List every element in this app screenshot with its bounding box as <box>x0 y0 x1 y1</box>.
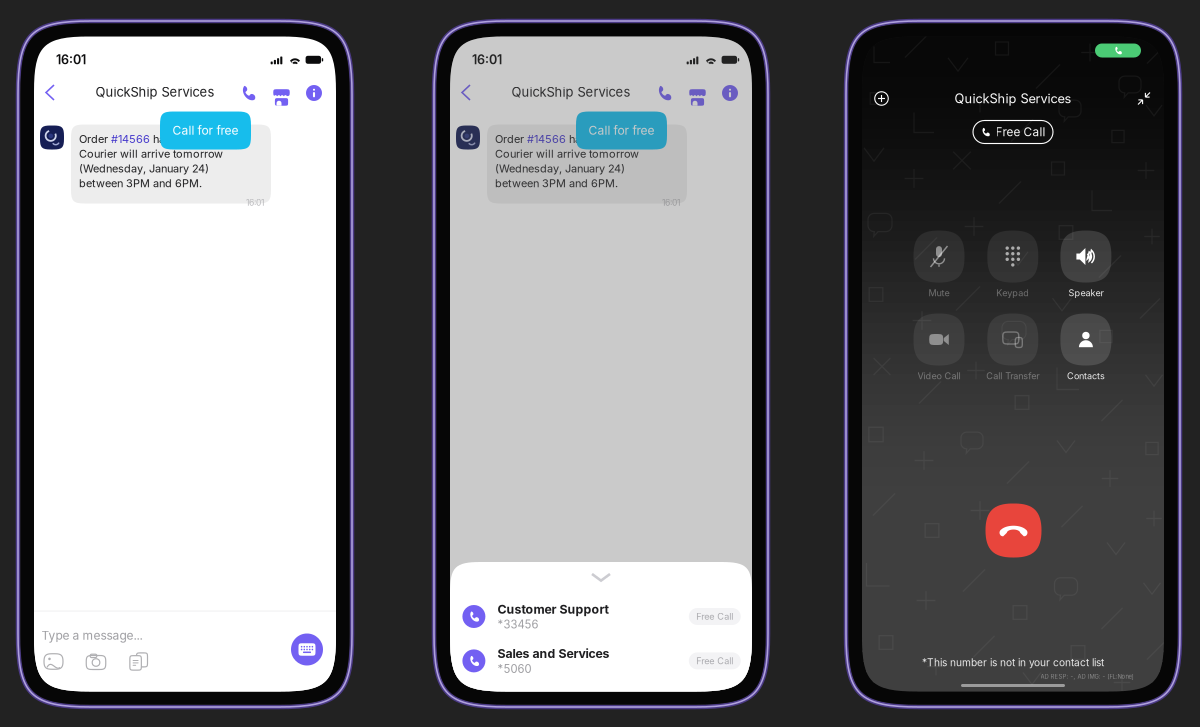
staticText: 16:01 <box>472 52 502 67</box>
button[interactable]: Voice call <box>237 82 259 104</box>
button[interactable]: Files <box>535 648 573 674</box>
staticText: Free Call <box>696 655 733 666</box>
staticText: Order <box>79 132 111 146</box>
staticText: between 3PM and 6PM. <box>79 177 202 190</box>
button[interactable]: Speaker <box>1049 231 1123 297</box>
button[interactable]: Call for free <box>160 111 251 149</box>
button[interactable]: Collapse sheet <box>571 566 631 588</box>
staticText: Type a message... <box>457 628 558 643</box>
staticText: has been shipped. <box>566 132 663 146</box>
staticText: Call for free <box>172 123 238 138</box>
button[interactable]: Gallery <box>34 648 72 674</box>
button[interactable]: Minimise call <box>1133 87 1155 109</box>
staticText: *5060 <box>498 662 532 676</box>
button[interactable]: Gallery <box>450 648 488 674</box>
staticText: Keypad <box>996 287 1029 298</box>
staticText: Order <box>495 132 527 146</box>
button[interactable]: Add participant <box>870 87 892 109</box>
button[interactable]: Chat info <box>303 82 325 104</box>
staticText: QuickShip Services <box>954 91 1071 106</box>
staticText: between 3PM and 6PM. <box>495 177 618 190</box>
staticText: #14566 <box>111 132 150 146</box>
staticText: Call Transfer <box>986 370 1039 381</box>
staticText: Customer Support <box>498 602 609 617</box>
button[interactable]: Call for free <box>576 111 667 149</box>
staticText: Type a message... <box>41 628 142 643</box>
button[interactable]: Customer Support <box>450 594 752 638</box>
button[interactable]: Call Transfer <box>976 314 1050 380</box>
button[interactable]: End call <box>985 503 1041 557</box>
staticText: 16:01 <box>56 52 86 67</box>
button[interactable]: Back <box>37 79 63 105</box>
button[interactable]: Mute <box>902 231 976 297</box>
button[interactable]: Voice call <box>653 82 675 104</box>
button[interactable]: Contacts <box>1049 314 1123 380</box>
button[interactable]: Camera <box>493 648 531 674</box>
button[interactable]: Keypad <box>976 231 1050 297</box>
button[interactable]: Chat info <box>719 82 741 104</box>
button[interactable]: Free Call <box>973 120 1053 143</box>
staticText: Sales and Services <box>498 646 610 661</box>
staticText: QuickShip Services <box>95 84 214 100</box>
staticText: (Wednesday, January 24) <box>79 162 209 175</box>
staticText: #14566 <box>527 132 566 146</box>
button[interactable]: Back <box>453 79 479 105</box>
staticText: *33456 <box>498 618 539 631</box>
button[interactable]: Business page <box>686 82 708 104</box>
staticText: Free Call <box>995 125 1045 139</box>
staticText: Courier will arrive tomorrow <box>495 147 639 160</box>
staticText: QuickShip Services <box>511 84 630 100</box>
button[interactable]: Video Call <box>902 314 976 380</box>
staticText: 16:01 <box>662 197 680 208</box>
staticText: AD RESP: -, AD IMG: - [FL:None] <box>1040 673 1133 680</box>
staticText: Video Call <box>917 370 960 381</box>
button[interactable]: Keyboard <box>291 633 323 665</box>
staticText: Free Call <box>696 611 733 622</box>
button[interactable]: Keyboard <box>707 633 739 665</box>
staticText: Call for free <box>588 123 654 138</box>
button[interactable]: Camera <box>77 648 115 674</box>
staticText: Speaker <box>1068 287 1103 298</box>
staticText: (Wednesday, January 24) <box>495 162 625 175</box>
staticText: Courier will arrive tomorrow <box>79 147 223 160</box>
staticText: *This number is not in your contact list <box>922 656 1104 669</box>
staticText: has been shipped. <box>150 132 247 146</box>
staticText: Mute <box>928 287 949 298</box>
button[interactable]: Sales and Services <box>450 639 752 683</box>
button[interactable]: Files <box>119 648 157 674</box>
button[interactable]: Business page <box>270 82 292 104</box>
staticText: Contacts <box>1067 370 1105 381</box>
staticText: 16:01 <box>246 197 264 208</box>
